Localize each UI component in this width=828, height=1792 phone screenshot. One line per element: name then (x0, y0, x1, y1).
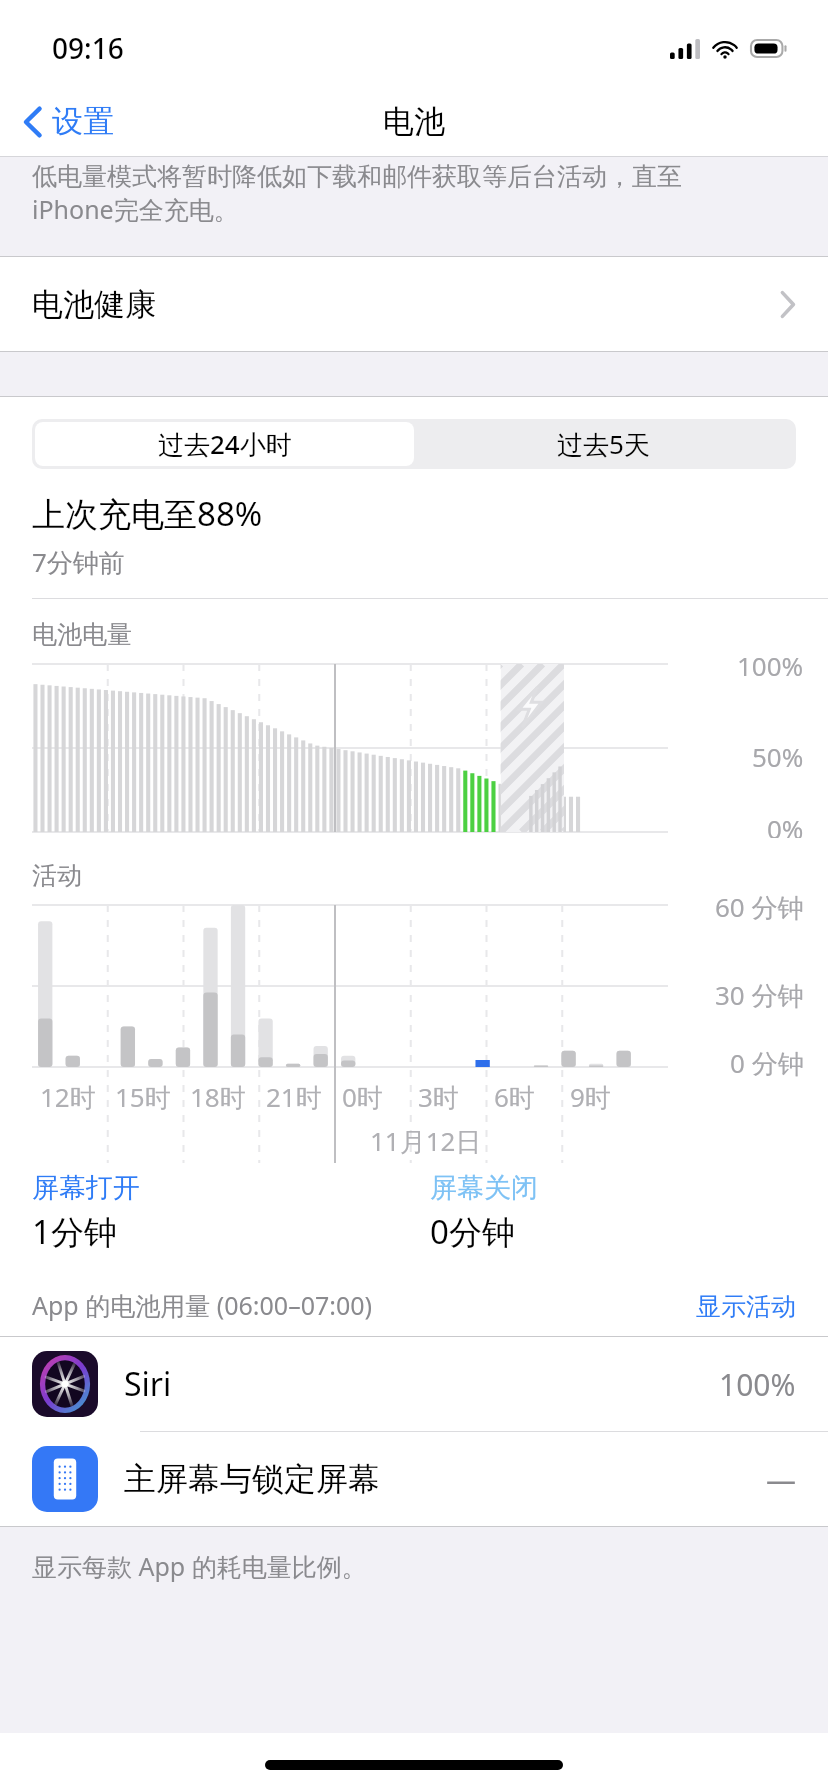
staticText: 显示活动 (696, 1291, 796, 1322)
staticText: 09:16 (52, 29, 124, 67)
staticText: App 的电池用量 (06:00–07:00) (32, 1288, 373, 1322)
staticText: 电池健康 (32, 285, 156, 324)
staticText: 50% (752, 739, 804, 774)
staticText: 0 分钟 (730, 1045, 804, 1081)
staticText: 60 分钟 (715, 889, 804, 925)
staticText: 上次充电至88% (32, 491, 263, 536)
button[interactable]: 过去5天 (414, 422, 793, 466)
staticText: 0分钟 (430, 1209, 515, 1254)
other: Siri (32, 1351, 98, 1417)
staticText: 100% (719, 1364, 796, 1405)
staticText: 1分钟 (32, 1209, 117, 1254)
staticText: 过去24小时 (158, 426, 292, 462)
staticText: 活动 (32, 860, 82, 891)
button[interactable]: Siri (0, 1337, 828, 1431)
staticText: 屏幕关闭 (430, 1171, 538, 1205)
staticText: 3时 (418, 1079, 459, 1115)
staticText: 设置 (52, 102, 114, 141)
staticText: 电池 (383, 102, 445, 141)
staticText: 屏幕打开 (32, 1171, 140, 1205)
button[interactable]: Home Screen and Lock Screen (0, 1432, 828, 1526)
staticText: 7分钟前 (32, 544, 125, 580)
button[interactable]: 设置 (0, 94, 130, 149)
staticText: 0% (767, 811, 804, 846)
staticText: 低电量模式将暂时降低如下载和邮件获取等后台活动，直至 (32, 161, 682, 192)
staticText: 0时 (342, 1079, 383, 1115)
staticText: 9时 (570, 1079, 611, 1115)
staticText: — (766, 1459, 796, 1500)
staticText: 电池电量 (32, 619, 132, 650)
staticText: 21时 (266, 1079, 322, 1115)
staticText: iPhone完全充电。 (32, 192, 239, 226)
staticText: 6时 (494, 1079, 535, 1115)
staticText: 30 分钟 (715, 977, 804, 1013)
staticText: 18时 (190, 1079, 246, 1115)
button[interactable]: 过去24小时 (35, 422, 414, 466)
staticText: 11月12日 (370, 1123, 482, 1159)
button[interactable]: 显示活动 (696, 1291, 796, 1322)
button[interactable]: 电池健康 (0, 257, 828, 351)
staticText: 100% (737, 648, 804, 683)
staticText: 15时 (115, 1079, 171, 1115)
other: Home Screen and Lock Screen (32, 1446, 98, 1512)
staticText: Siri (124, 1362, 172, 1406)
staticText: 12时 (40, 1079, 96, 1115)
staticText: 过去5天 (557, 426, 650, 462)
staticText: 主屏幕与锁定屏幕 (124, 1459, 380, 1499)
staticText: 显示每款 App 的耗电量比例。 (32, 1549, 367, 1583)
